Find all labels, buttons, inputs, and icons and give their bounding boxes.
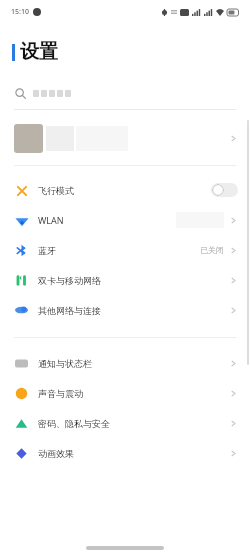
button[interactable]: 通知与状态栏 [0,348,250,378]
staticText: 动画效果 [38,448,74,459]
staticText: 其他网络与连接 [38,305,101,316]
button[interactable]: 蓝牙 [0,235,250,265]
button[interactable]: 声音与震动 [0,378,250,408]
button[interactable]: WLAN [0,205,250,235]
button[interactable]: 其他网络与连接 [0,295,250,325]
button[interactable] [0,110,250,158]
button[interactable]: Search [0,82,250,104]
staticText: 飞行模式 [38,185,74,196]
staticText: WLAN [38,214,64,226]
staticText: 已关闭 [200,245,224,255]
staticText: 15:10 [11,7,29,17]
staticText: 声音与震动 [38,388,83,399]
button[interactable]: Airplane mode toggle [211,183,238,197]
staticText: 设置 [20,40,58,64]
other: Search [15,88,26,99]
button[interactable]: 飞行模式 [0,175,250,205]
staticText: 双卡与移动网络 [38,275,101,286]
button[interactable]: 动画效果 [0,438,250,468]
staticText: 蓝牙 [38,245,56,256]
staticText: 密码、隐私与安全 [38,418,110,429]
button[interactable]: 双卡与移动网络 [0,265,250,295]
staticText: 通知与状态栏 [38,358,92,369]
button[interactable]: 密码、隐私与安全 [0,408,250,438]
